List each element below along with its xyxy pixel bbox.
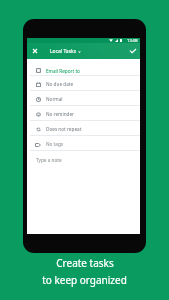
staticText: No tags bbox=[46, 141, 64, 147]
button[interactable]: Close bbox=[27, 43, 43, 59]
staticText: Local Tasks bbox=[50, 48, 77, 55]
button[interactable]: No tags bbox=[27, 136, 140, 151]
button[interactable]: Email Report to bbox=[27, 59, 140, 76]
staticText: to keep organized bbox=[42, 273, 127, 287]
button[interactable]: Save task bbox=[126, 43, 140, 59]
staticText: 13:08 bbox=[127, 38, 138, 43]
button[interactable]: No reminder bbox=[27, 106, 140, 121]
staticText: Email Report to bbox=[46, 68, 80, 74]
staticText: No reminder bbox=[46, 111, 75, 117]
button[interactable]: Does not repeat bbox=[27, 121, 140, 136]
staticText: Does not repeat bbox=[46, 126, 82, 132]
staticText: Type a note bbox=[36, 157, 62, 163]
staticText: No due date bbox=[46, 81, 74, 87]
staticText: Create tasks bbox=[56, 256, 114, 270]
button[interactable]: Normal bbox=[27, 91, 140, 106]
button[interactable]: Local Tasks bbox=[50, 48, 81, 55]
button[interactable]: No due date bbox=[27, 76, 140, 91]
staticText: Normal bbox=[46, 96, 63, 102]
